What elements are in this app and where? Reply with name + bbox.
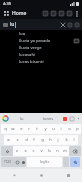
staticText: w [11, 126, 15, 132]
staticText: . [65, 160, 67, 165]
button[interactable]: b [45, 146, 53, 156]
button[interactable]: i [57, 124, 65, 134]
button[interactable]: Home [28, 169, 55, 182]
staticText: n [56, 148, 59, 154]
staticText: v [40, 148, 43, 154]
button[interactable]: e [17, 124, 25, 134]
button[interactable]: Numbers and symbols [1, 157, 14, 167]
staticText: u [52, 126, 55, 132]
button[interactable]: Search action 1 [73, 21, 80, 28]
staticText: p [76, 126, 79, 132]
staticText: h [49, 137, 52, 143]
staticText: z [16, 148, 18, 154]
staticText: m [63, 148, 67, 154]
staticText: ?123 [4, 160, 11, 164]
button[interactable]: h [46, 135, 54, 145]
staticText: lucas bisonti [19, 59, 44, 65]
staticText: r [28, 126, 30, 132]
button[interactable]: Clipboard [68, 115, 75, 122]
staticText: s [16, 137, 19, 143]
staticText: lluvia verge [19, 45, 42, 51]
button[interactable]: d [22, 135, 30, 145]
button[interactable]: Recent apps [55, 169, 82, 182]
staticText: lluvia ya pasado [19, 38, 51, 44]
staticText: a [7, 137, 10, 143]
staticText: q [4, 126, 7, 132]
staticText: l [73, 137, 75, 143]
button[interactable]: Action 0 [41, 9, 49, 17]
button[interactable]: j [54, 135, 62, 145]
button[interactable]: Shift [1, 146, 13, 156]
button[interactable]: lluvia ya pasado [0, 37, 82, 44]
button[interactable]: Action 2 [57, 9, 65, 17]
button[interactable]: t [33, 124, 41, 134]
button[interactable]: l [70, 135, 78, 145]
staticText: f [33, 137, 35, 143]
button[interactable]: Stickers [61, 115, 68, 122]
button[interactable]: Search action 0 [66, 21, 73, 28]
staticText: 4:35 [3, 1, 11, 6]
button[interactable]: lua [0, 30, 82, 37]
button[interactable]: p [73, 124, 81, 134]
button[interactable]: Backspace [69, 146, 81, 156]
button[interactable]: Open navigation menu [2, 9, 10, 17]
button[interactable]: lucas bisonti [0, 58, 82, 65]
button[interactable]: lluvia verge [0, 44, 82, 51]
button[interactable]: a [4, 135, 13, 145]
button[interactable]: Google [1, 114, 9, 122]
button[interactable]: w [9, 124, 17, 134]
button[interactable]: v [37, 146, 45, 156]
staticText: lu [10, 21, 15, 28]
button[interactable]: Search [70, 157, 80, 167]
staticText: g [41, 137, 44, 143]
button[interactable]: Action 3 [65, 9, 73, 17]
button[interactable]: Insert suggestion [73, 38, 79, 44]
button[interactable]: Back [0, 169, 28, 182]
button[interactable]: Space [27, 157, 62, 167]
button[interactable]: lunes [35, 113, 61, 123]
button[interactable]: Keyboard settings [75, 115, 81, 121]
staticText: lua [19, 31, 26, 37]
button[interactable]: lu [9, 113, 35, 123]
button[interactable]: r [25, 124, 33, 134]
button[interactable]: x [21, 146, 29, 156]
staticText: lu [20, 116, 24, 121]
button[interactable]: u [49, 124, 57, 134]
staticText: b [48, 148, 51, 154]
staticText: x [24, 148, 27, 154]
staticText: lucasahi [19, 52, 36, 58]
staticText: e [20, 126, 23, 132]
button[interactable]: Emoji [14, 157, 20, 167]
button[interactable]: c [29, 146, 37, 156]
button[interactable]: q [1, 124, 9, 134]
staticText: k [65, 137, 68, 143]
staticText: y [44, 126, 47, 132]
button[interactable]: n [53, 146, 61, 156]
button[interactable]: s [13, 135, 22, 145]
button[interactable]: z [13, 146, 21, 156]
staticText: lunes [43, 116, 54, 121]
button[interactable]: o [65, 124, 73, 134]
button[interactable]: f [30, 135, 38, 145]
button[interactable]: Voice input [20, 157, 26, 167]
staticText: c [32, 148, 35, 154]
button[interactable]: lu [10, 21, 59, 28]
staticText: i [60, 126, 62, 132]
staticText: t [36, 126, 38, 132]
button[interactable]: More options [73, 10, 80, 17]
staticText: j [57, 137, 59, 143]
button[interactable]: Search engine [2, 21, 9, 28]
button[interactable]: Action 1 [49, 9, 57, 17]
button[interactable]: y [41, 124, 49, 134]
button[interactable]: g [38, 135, 46, 145]
staticText: o [68, 126, 71, 132]
staticText: Inglés [40, 160, 50, 164]
button[interactable]: Clear search [59, 21, 66, 28]
button[interactable]: m [61, 146, 69, 156]
staticText: Home [12, 10, 27, 17]
button[interactable]: k [62, 135, 70, 145]
staticText: d [25, 137, 28, 143]
button[interactable]: lucasahi [0, 51, 82, 58]
